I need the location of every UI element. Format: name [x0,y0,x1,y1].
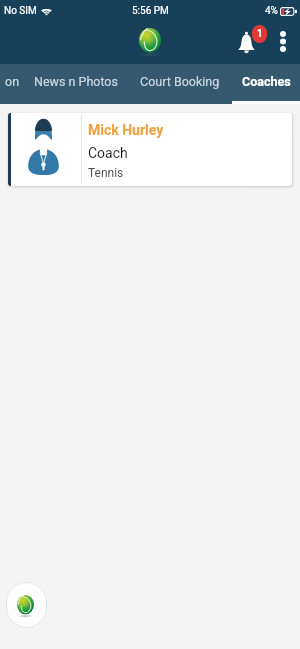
button[interactable]: Notifications [232,24,268,58]
button[interactable]: More options [268,24,298,58]
button[interactable]: Mick Hurley [8,113,292,186]
staticText: Coaches [242,74,291,89]
staticText: No SIM [4,5,37,17]
staticText: News n Photos [34,74,118,89]
button[interactable]: on [0,64,24,104]
button[interactable]: Court Booking [128,64,232,104]
staticText: 4% [265,5,278,17]
staticText: Tennis [88,166,124,180]
staticText: Court Booking [140,74,220,89]
staticText: Coach [88,145,128,161]
staticText: 5:56 PM [132,5,169,17]
button[interactable]: News n Photos [24,64,128,104]
staticText: on [5,74,20,89]
button[interactable]: Add [6,582,47,628]
staticText: Mick Hurley [88,122,164,138]
staticText: 1 [257,28,263,40]
button[interactable]: Coaches [232,64,300,104]
